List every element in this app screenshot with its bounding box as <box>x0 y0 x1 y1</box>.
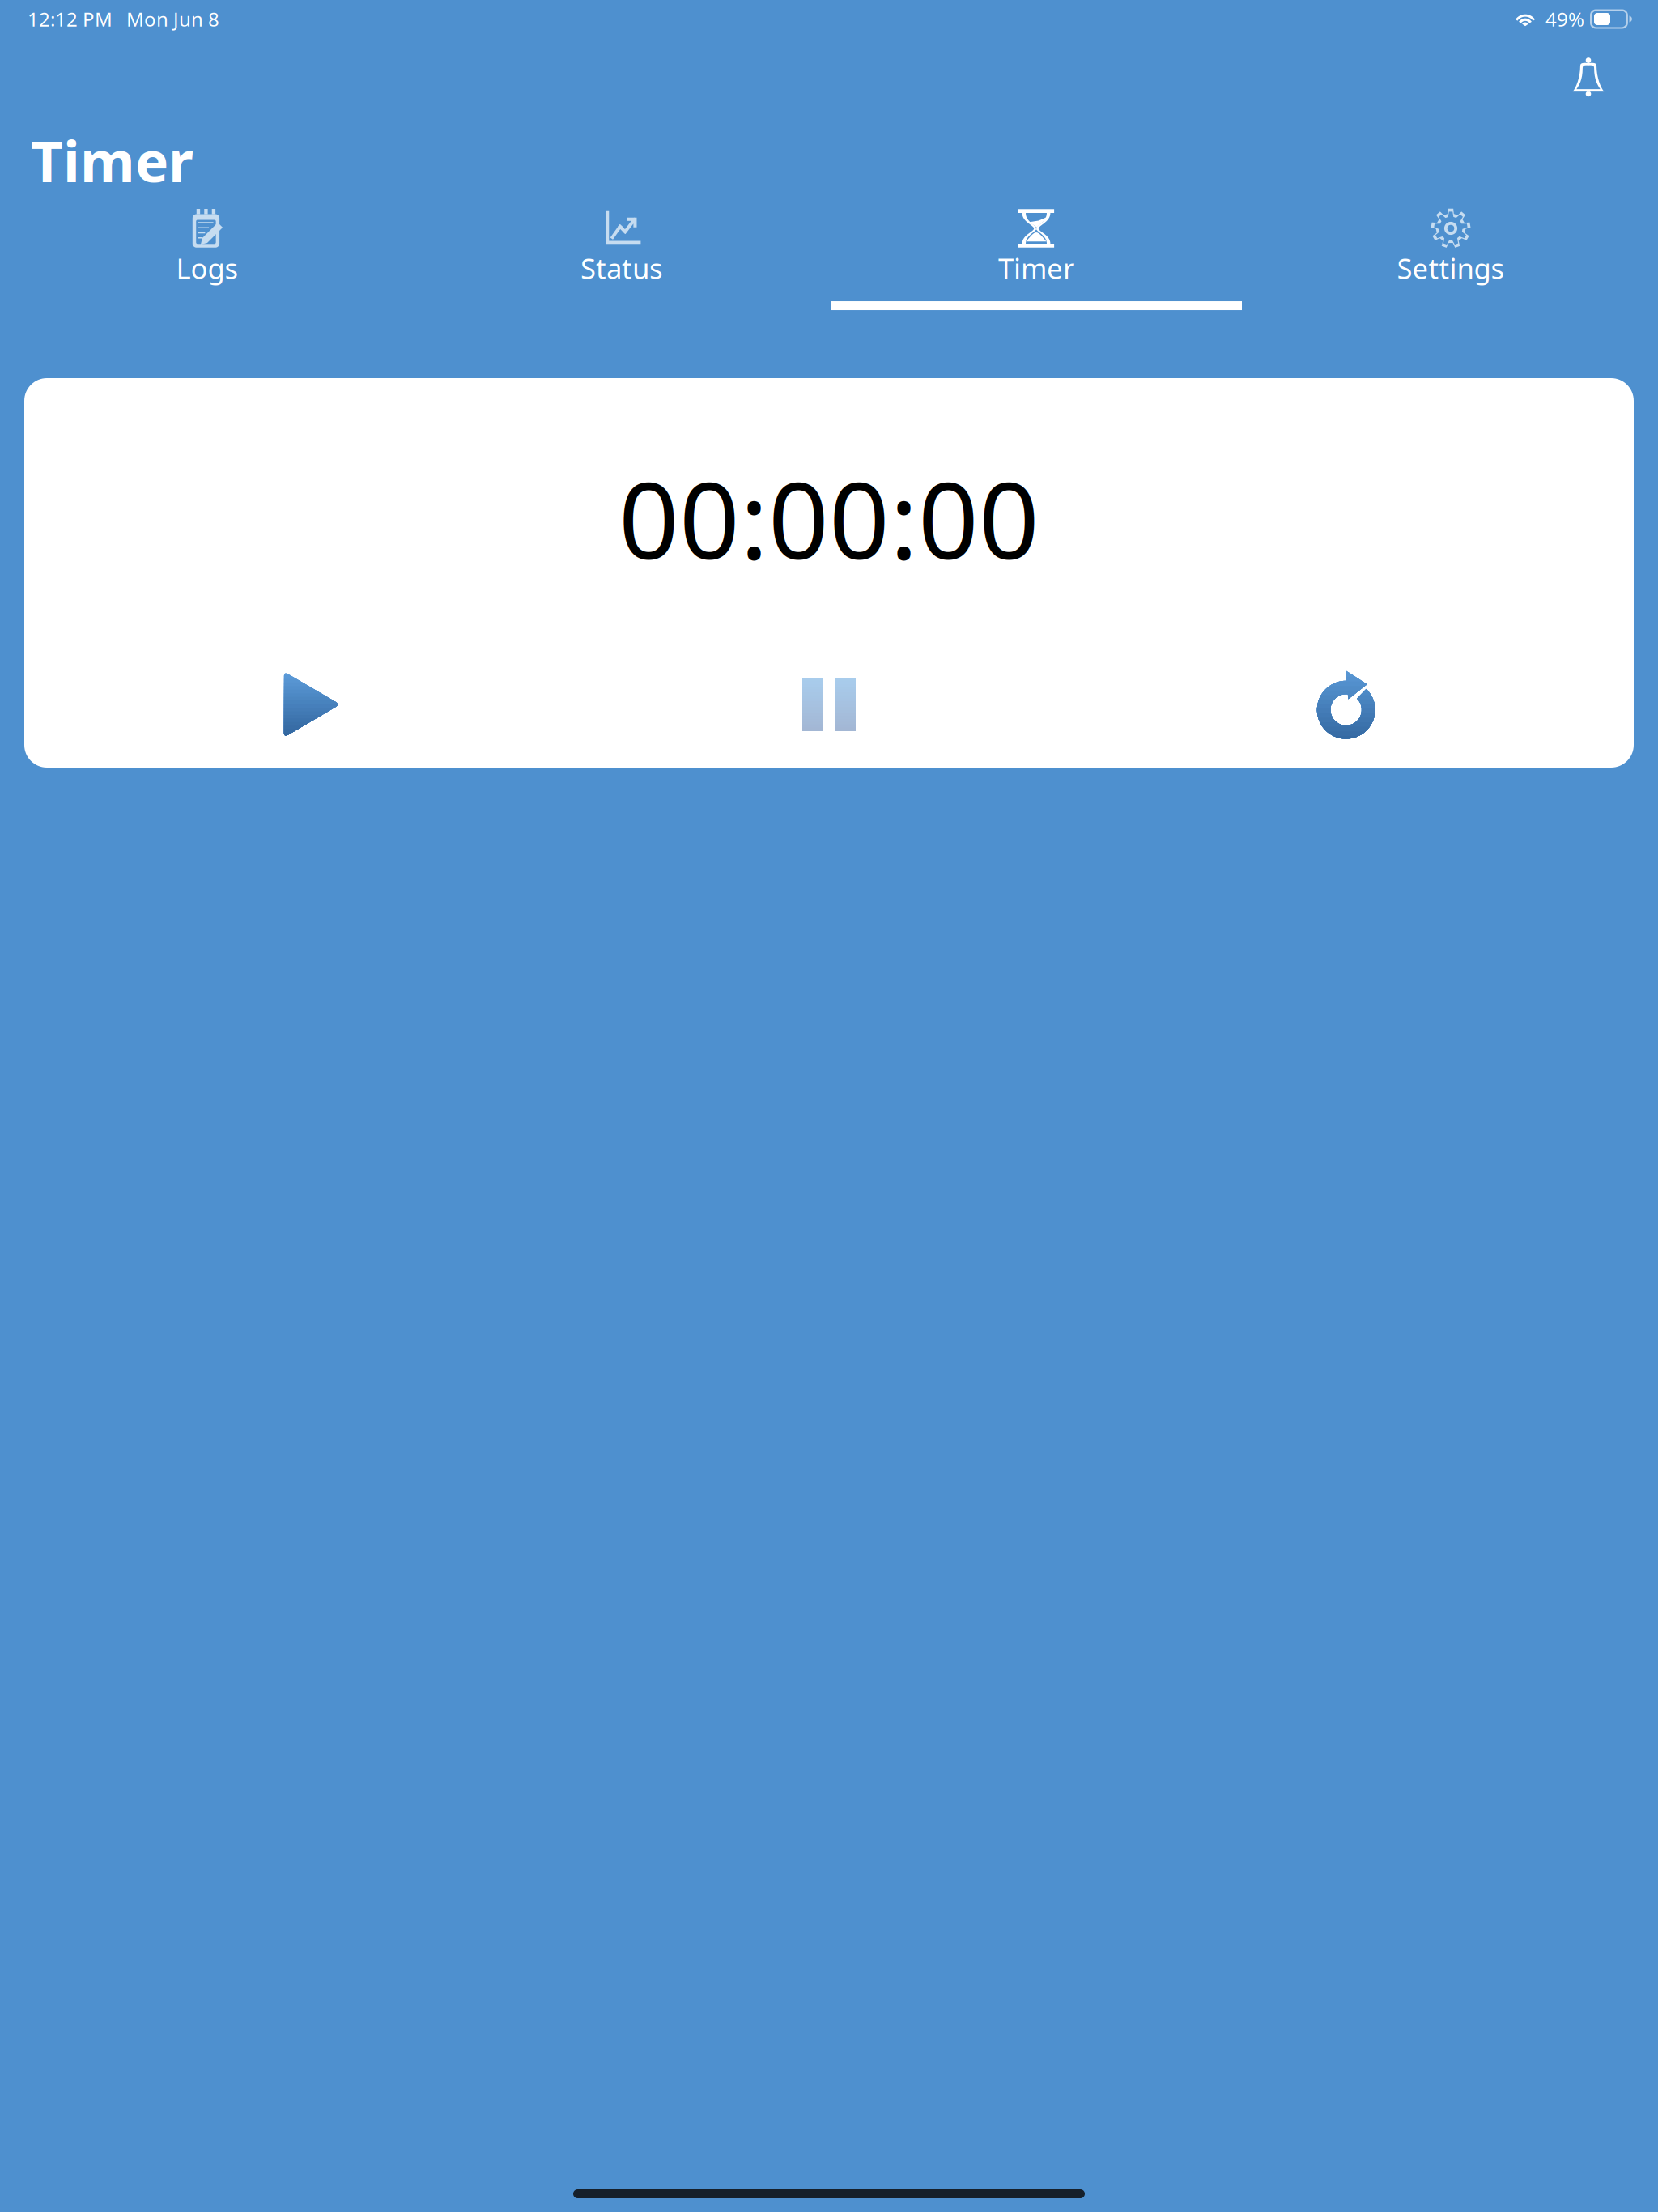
button[interactable]: Reset <box>1087 654 1605 755</box>
staticText: Mon Jun 8 <box>126 6 219 32</box>
button[interactable]: Settings <box>1243 203 1658 325</box>
staticText: Timer <box>31 123 193 198</box>
button[interactable]: Status <box>414 203 829 325</box>
staticText: 12:12 PM <box>28 6 113 32</box>
button[interactable]: Notifications <box>1551 40 1626 115</box>
button[interactable]: Logs <box>0 203 414 325</box>
staticText: Settings <box>1397 249 1505 287</box>
staticText: Timer <box>998 249 1074 287</box>
button[interactable]: Start <box>53 654 571 755</box>
staticText: Status <box>580 249 663 287</box>
staticText: Logs <box>176 249 238 287</box>
button[interactable]: Timer <box>829 203 1243 325</box>
staticText: 49% <box>1545 6 1584 32</box>
staticText: 00:00:00 <box>619 448 1039 588</box>
button[interactable]: Pause <box>571 654 1088 755</box>
